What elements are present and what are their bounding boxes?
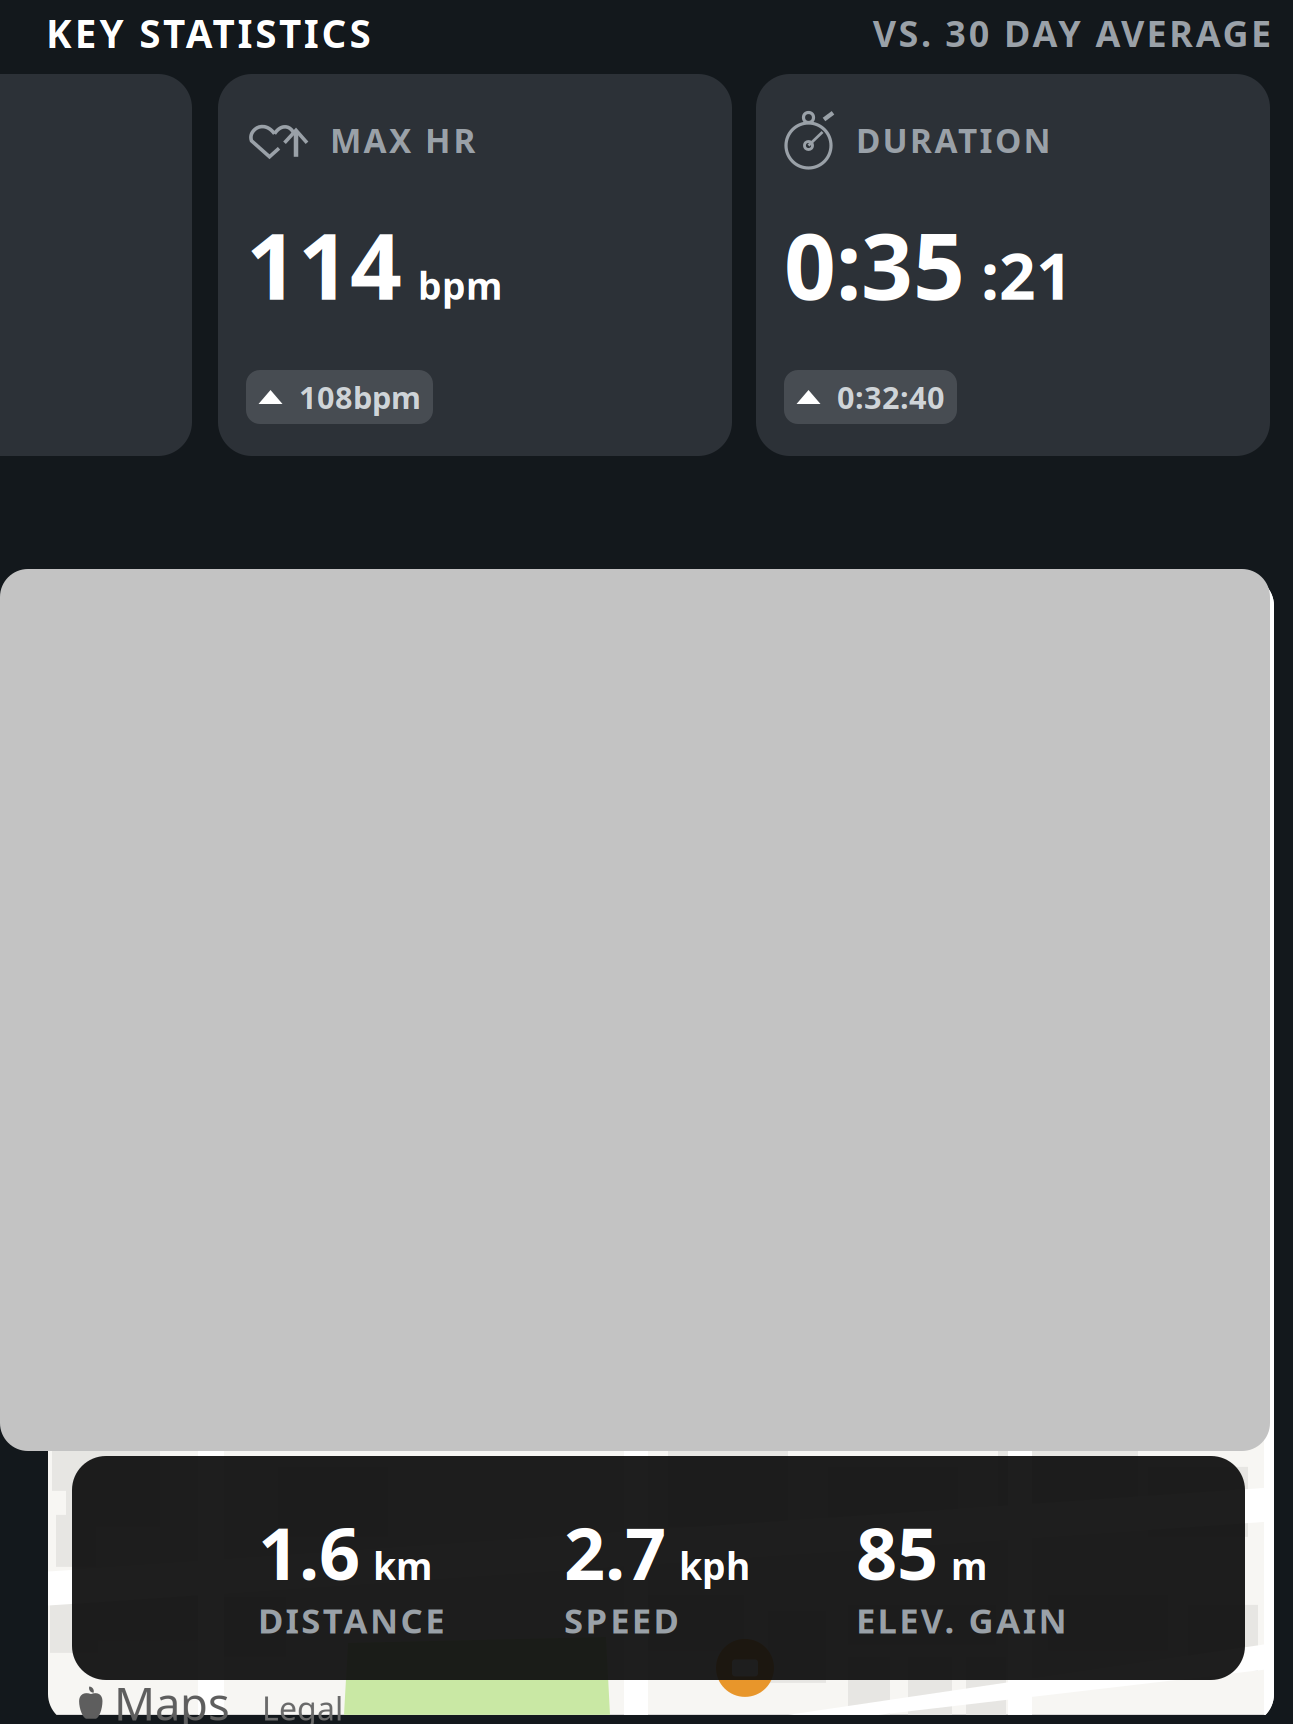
staticText: bpm <box>418 260 502 310</box>
staticText: :21 <box>981 232 1073 317</box>
button[interactable]: MAX HR <box>218 74 732 456</box>
staticText: Maps <box>114 1673 230 1724</box>
staticText: KEY STATISTICS <box>46 7 370 59</box>
staticText: ELEV. GAIN <box>856 1597 1066 1643</box>
staticText: VS. 30 DAY AVERAGE <box>873 9 1271 57</box>
button[interactable]: 1.6 <box>72 1456 1245 1680</box>
staticText: 85 <box>856 1504 938 1600</box>
staticText: 108bpm <box>299 377 421 417</box>
staticText: 0:32:40 <box>837 377 945 417</box>
button[interactable]: DURATION <box>756 74 1270 456</box>
staticText: km <box>373 1541 432 1590</box>
staticText: 114 <box>246 204 402 325</box>
staticText: MAX HR <box>330 118 475 162</box>
staticText: Legal <box>262 1687 343 1724</box>
staticText: m <box>951 1541 987 1590</box>
staticText: DISTANCE <box>258 1597 444 1643</box>
staticText: DURATION <box>856 118 1050 162</box>
staticText: SPEED <box>564 1597 678 1643</box>
staticText: 1.6 <box>258 1504 360 1600</box>
staticText: 2.7 <box>564 1504 666 1600</box>
staticText: 0:35 <box>784 204 965 325</box>
staticText: kph <box>679 1541 750 1590</box>
